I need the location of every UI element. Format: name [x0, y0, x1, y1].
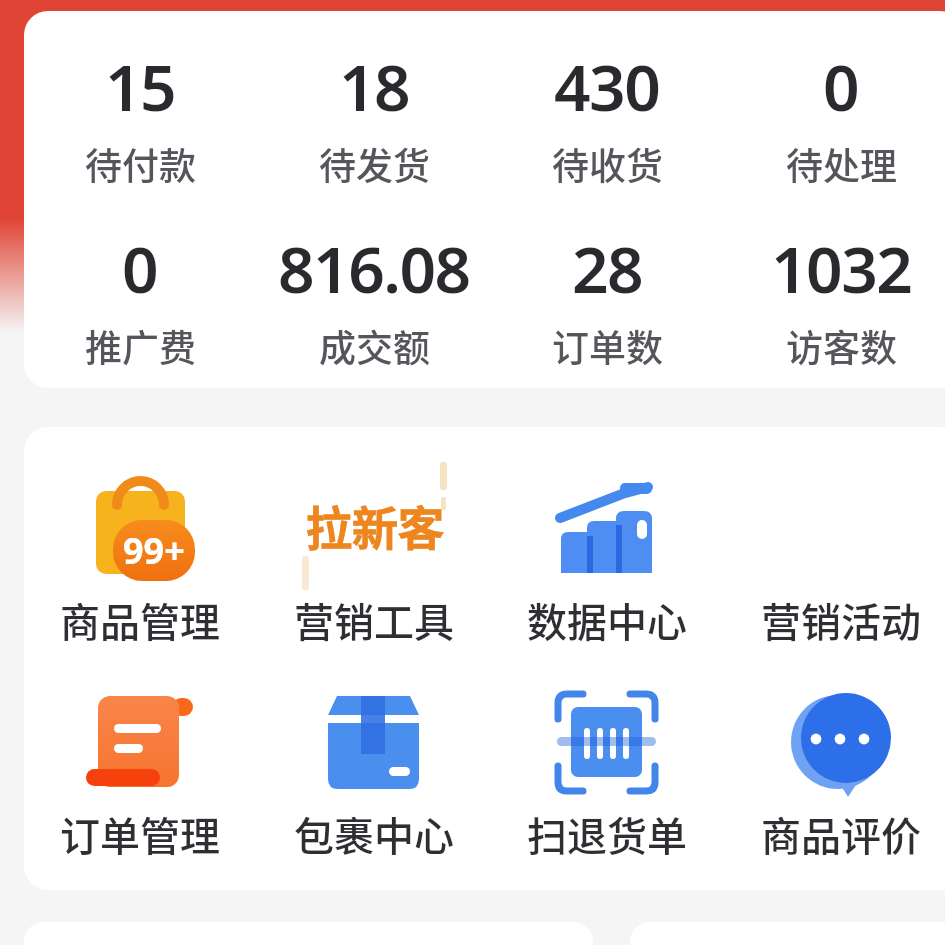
staticText: 99+ — [123, 526, 185, 575]
staticText: 推广费 — [85, 319, 196, 373]
staticText: 商品评价 — [761, 805, 921, 863]
staticText: 扫退货单 — [527, 805, 687, 863]
button[interactable]: 0 — [10, 223, 270, 313]
staticText: 营销活动 — [761, 591, 921, 649]
staticText: 访客数 — [786, 319, 897, 373]
staticText: 0 — [122, 225, 158, 312]
staticText: 28 — [572, 225, 643, 312]
button[interactable] — [30, 672, 250, 867]
button[interactable]: 1032 — [711, 223, 945, 313]
staticText: 待收货 — [552, 137, 663, 191]
button[interactable] — [30, 455, 250, 650]
button[interactable]: 15 — [10, 41, 270, 131]
staticText: 待发货 — [319, 137, 430, 191]
staticText: 营销工具 — [294, 591, 454, 649]
button[interactable] — [264, 672, 484, 867]
staticText: 包裹中心 — [294, 805, 454, 863]
button[interactable]: 18 — [244, 41, 504, 131]
staticText: 商品管理 — [60, 591, 220, 649]
staticText: 18 — [339, 43, 410, 130]
staticText: 816.08 — [278, 225, 470, 312]
staticText: 1032 — [771, 225, 912, 312]
button[interactable] — [497, 672, 717, 867]
staticText: 成交额 — [319, 319, 430, 373]
staticText: 拉新客 — [306, 492, 444, 559]
button[interactable]: 430 — [477, 41, 737, 131]
staticText: 0 — [823, 43, 859, 130]
staticText: 430 — [554, 43, 660, 130]
button[interactable] — [264, 455, 484, 650]
button[interactable]: 0 — [711, 41, 945, 131]
button[interactable]: 816.08 — [244, 223, 504, 313]
staticText: 订单管理 — [60, 805, 220, 863]
button[interactable] — [497, 455, 717, 650]
staticText: 15 — [105, 43, 176, 130]
staticText: 待处理 — [786, 137, 897, 191]
staticText: 订单数 — [552, 319, 663, 373]
button[interactable] — [731, 672, 945, 867]
button[interactable]: 28 — [477, 223, 737, 313]
staticText: 数据中心 — [527, 591, 687, 649]
button[interactable] — [731, 455, 945, 650]
staticText: 待付款 — [85, 137, 196, 191]
